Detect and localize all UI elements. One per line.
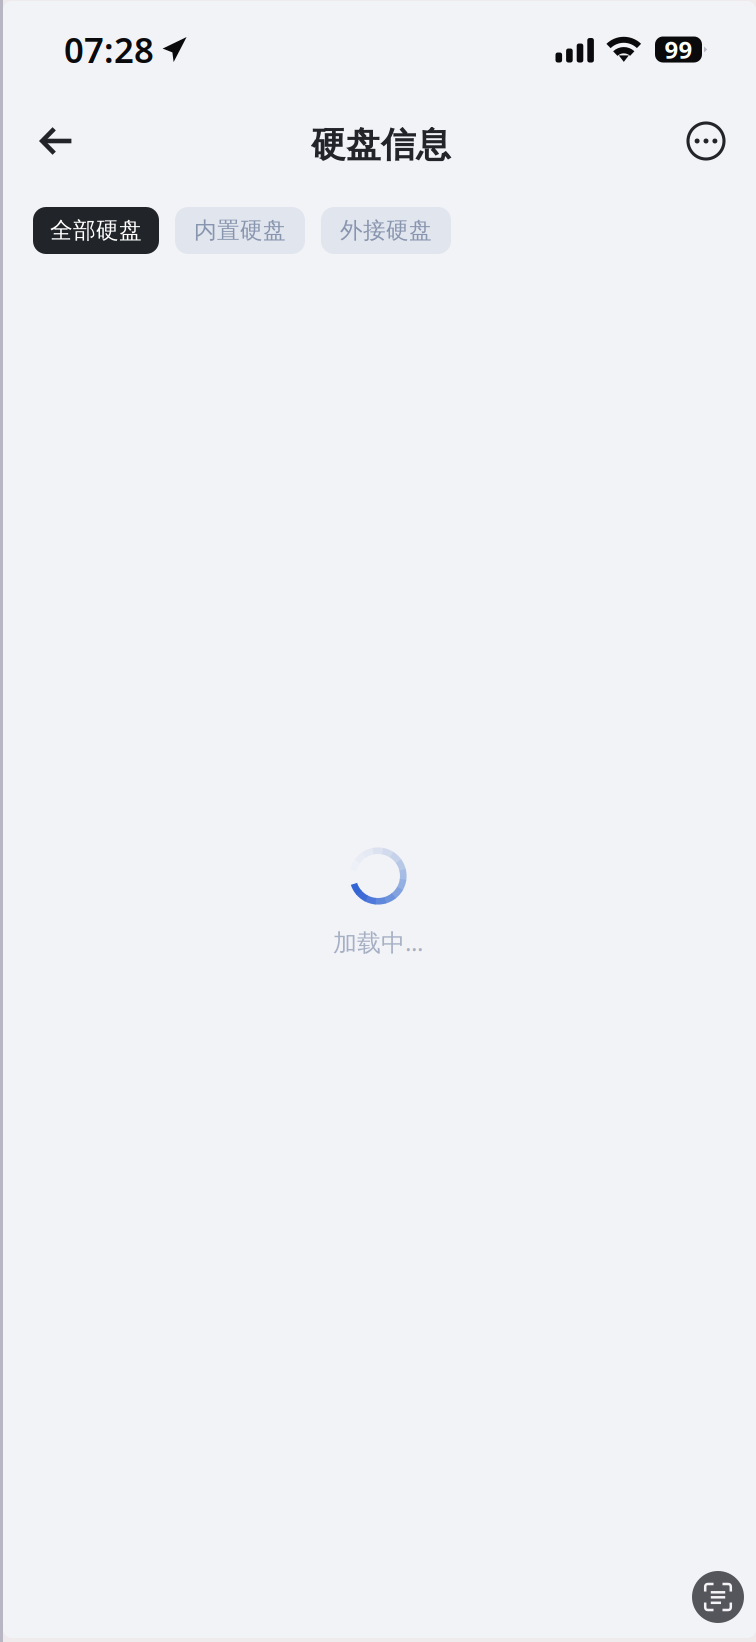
staticText: 加载中... bbox=[333, 926, 423, 958]
staticText: 内置硬盘 bbox=[194, 217, 286, 244]
staticText: 硬盘信息 bbox=[311, 124, 451, 166]
staticText: 07:28 bbox=[64, 26, 154, 72]
button[interactable]: 更多 bbox=[678, 113, 734, 169]
button[interactable]: 返回 bbox=[28, 113, 84, 169]
button[interactable]: 全部硬盘 bbox=[33, 207, 159, 254]
staticText: 外接硬盘 bbox=[340, 217, 432, 244]
button[interactable]: 扫描文档 bbox=[692, 1571, 744, 1623]
staticText: 全部硬盘 bbox=[50, 217, 142, 244]
button[interactable]: 外接硬盘 bbox=[321, 207, 451, 254]
button[interactable]: 内置硬盘 bbox=[175, 207, 305, 254]
staticText: 99 bbox=[664, 34, 692, 65]
